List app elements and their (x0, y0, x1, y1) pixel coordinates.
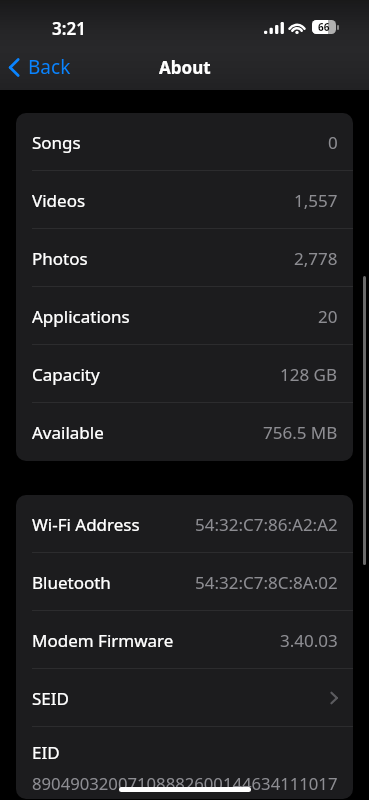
staticText: 3:21 (52, 17, 86, 40)
staticText: Modem Firmware (32, 629, 174, 652)
staticText: 128 GB (280, 363, 338, 386)
staticText: Videos (32, 189, 86, 212)
staticText: 1,557 (294, 189, 338, 212)
staticText: 54:32:C7:8C:8A:02 (195, 571, 338, 594)
staticText: Bluetooth (32, 571, 111, 594)
button[interactable]: Photos (16, 229, 353, 287)
button[interactable]: Modem Firmware (16, 611, 353, 669)
staticText: 2,778 (294, 247, 338, 270)
staticText: Available (32, 421, 104, 444)
staticText: 20 (318, 305, 338, 328)
button[interactable]: Songs (16, 113, 353, 171)
button[interactable]: Applications (16, 287, 353, 345)
staticText: 89049032007108882600144634111017 (32, 772, 338, 795)
button[interactable]: Videos (16, 171, 353, 229)
staticText: Wi-Fi Address (32, 513, 140, 536)
button[interactable]: Wi-Fi Address (16, 495, 353, 553)
button[interactable]: Capacity (16, 345, 353, 403)
staticText: 66 (318, 20, 330, 34)
staticText: Back (28, 54, 71, 80)
staticText: 3.40.03 (280, 629, 338, 652)
button[interactable]: SEID (16, 669, 353, 727)
staticText: SEID (32, 687, 69, 710)
staticText: Songs (32, 131, 81, 154)
staticText: Photos (32, 247, 88, 270)
staticText: EID (32, 741, 60, 764)
button[interactable]: Bluetooth (16, 553, 353, 611)
button[interactable]: Back (4, 48, 73, 86)
staticText: 0 (328, 131, 338, 154)
staticText: About (159, 56, 211, 79)
staticText: 54:32:C7:86:A2:A2 (195, 513, 338, 536)
staticText: Applications (32, 305, 130, 328)
button[interactable]: Available (16, 403, 353, 461)
button[interactable]: EID (16, 727, 353, 799)
staticText: Capacity (32, 363, 100, 386)
staticText: 756.5 MB (263, 421, 338, 444)
